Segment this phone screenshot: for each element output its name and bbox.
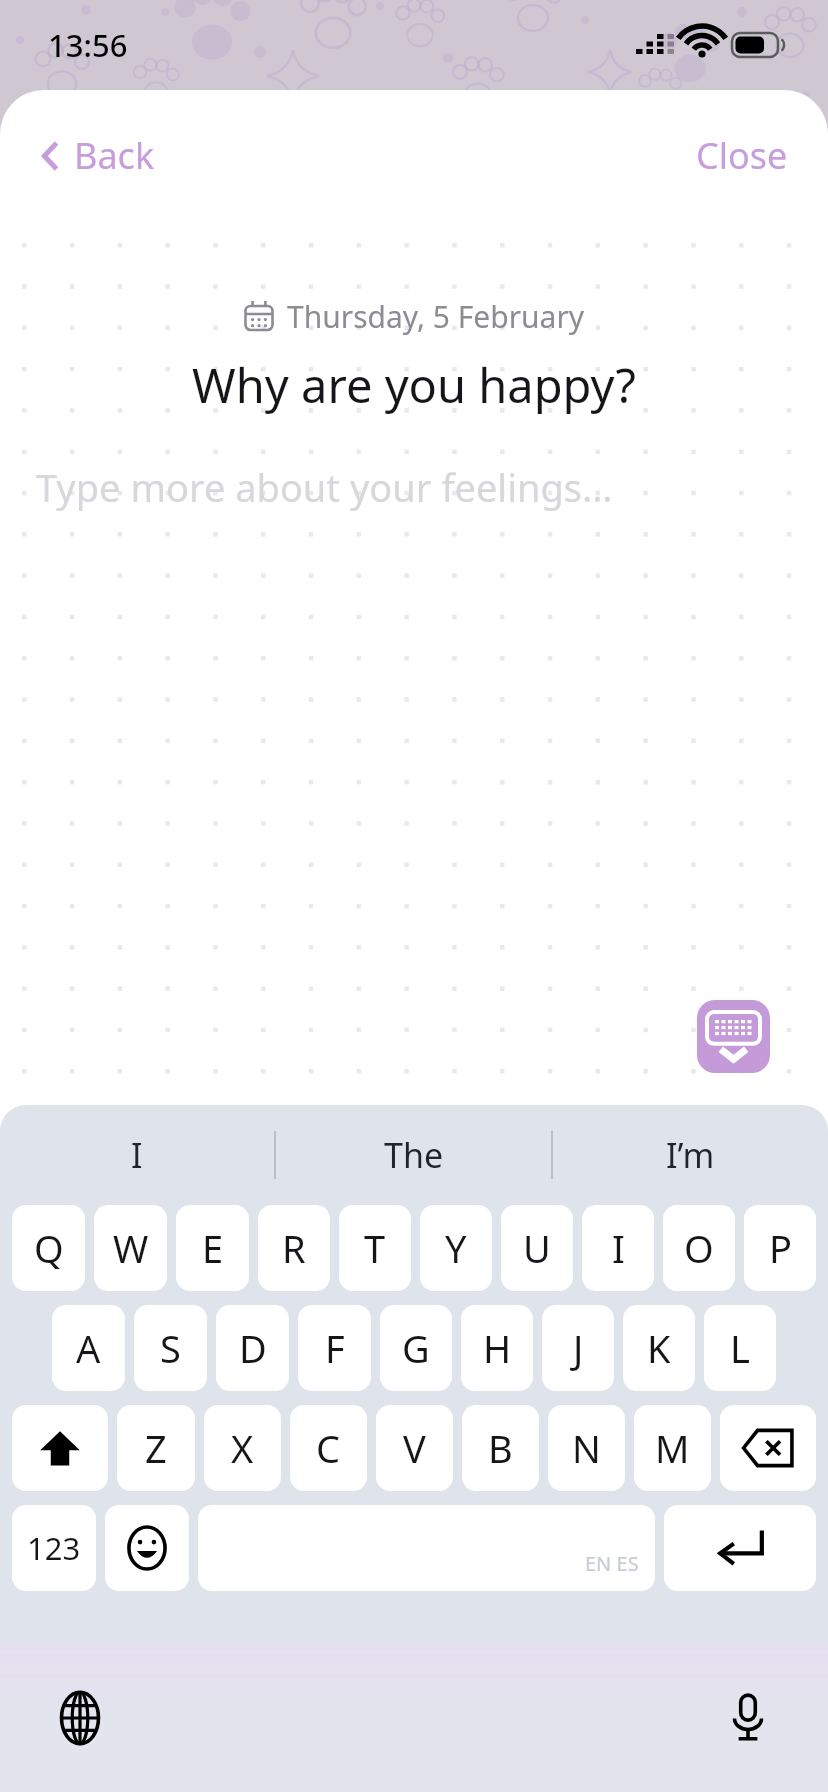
staticText: I — [131, 1132, 143, 1178]
button[interactable]: W — [94, 1205, 167, 1291]
staticText: D — [239, 1322, 267, 1374]
staticText: Q — [34, 1222, 64, 1274]
button[interactable]: H — [461, 1305, 533, 1391]
button[interactable]: O — [663, 1205, 735, 1291]
staticText: Why are you happy? — [0, 353, 828, 417]
button[interactable]: F — [298, 1305, 371, 1391]
button[interactable]: M — [634, 1405, 711, 1491]
button[interactable]: N — [548, 1405, 625, 1491]
staticText: Z — [145, 1422, 167, 1474]
staticText: I’m — [666, 1132, 715, 1178]
button[interactable]: Emoji — [105, 1505, 189, 1591]
button[interactable]: C — [290, 1405, 367, 1491]
button[interactable]: Shift — [12, 1405, 108, 1491]
staticText: O — [684, 1222, 714, 1274]
staticText: EN ES — [585, 1550, 639, 1577]
button[interactable]: Close — [684, 123, 800, 188]
button[interactable]: Backspace — [720, 1405, 816, 1491]
staticText: V — [403, 1422, 426, 1474]
staticText: C — [316, 1422, 341, 1474]
button[interactable]: Y — [420, 1205, 492, 1291]
staticText: B — [488, 1422, 513, 1474]
button[interactable]: Hide keyboard — [697, 1000, 770, 1073]
staticText: Back — [74, 131, 155, 180]
staticText: R — [282, 1222, 306, 1274]
button[interactable]: Enter — [664, 1505, 816, 1591]
staticText: X — [231, 1422, 254, 1474]
button[interactable]: D — [216, 1305, 289, 1391]
button[interactable]: G — [380, 1305, 452, 1391]
staticText: H — [483, 1322, 512, 1374]
staticText: L — [730, 1322, 750, 1374]
button[interactable]: X — [204, 1405, 281, 1491]
staticText: Type more about your feelings... — [36, 461, 613, 513]
staticText: E — [202, 1222, 224, 1274]
staticText: U — [523, 1222, 551, 1274]
staticText: N — [572, 1422, 601, 1474]
button[interactable]: T — [339, 1205, 411, 1291]
button[interactable]: Change language — [38, 1676, 122, 1760]
button[interactable]: R — [258, 1205, 330, 1291]
button[interactable]: B — [462, 1405, 539, 1491]
staticText: 13:56 — [48, 24, 128, 66]
button[interactable]: S — [134, 1305, 207, 1391]
button[interactable]: A — [52, 1305, 125, 1391]
staticText: G — [402, 1322, 430, 1374]
button[interactable]: Z — [117, 1405, 195, 1491]
button[interactable]: P — [744, 1205, 816, 1291]
button[interactable]: V — [376, 1405, 453, 1491]
button[interactable]: Q — [12, 1205, 85, 1291]
button[interactable]: U — [501, 1205, 573, 1291]
staticText: P — [769, 1222, 792, 1274]
staticText: W — [113, 1222, 149, 1274]
button[interactable]: Space — [198, 1505, 655, 1591]
staticText: Thursday, 5 February — [287, 296, 585, 337]
staticText: Y — [445, 1222, 467, 1274]
button[interactable]: K — [623, 1305, 695, 1391]
button[interactable]: Back — [28, 123, 167, 188]
staticText: Close — [696, 131, 788, 180]
staticText: F — [325, 1322, 345, 1374]
staticText: K — [647, 1322, 671, 1374]
staticText: 123 — [27, 1527, 81, 1569]
button[interactable]: Voice input — [706, 1676, 790, 1760]
staticText: M — [655, 1422, 690, 1474]
staticText: T — [364, 1222, 386, 1274]
button[interactable]: 123 — [12, 1505, 96, 1591]
button[interactable]: E — [176, 1205, 249, 1291]
button[interactable]: L — [704, 1305, 776, 1391]
staticText: S — [160, 1322, 181, 1374]
staticText: The — [384, 1132, 444, 1178]
staticText: J — [573, 1322, 584, 1374]
button[interactable]: The — [276, 1105, 551, 1205]
button[interactable]: I — [0, 1105, 274, 1205]
staticText: I — [612, 1222, 625, 1274]
button[interactable]: I’m — [553, 1105, 828, 1205]
staticText: A — [76, 1322, 101, 1374]
button[interactable]: J — [542, 1305, 614, 1391]
button[interactable]: Type more about your feelings... — [0, 461, 828, 551]
button[interactable]: I — [582, 1205, 654, 1291]
